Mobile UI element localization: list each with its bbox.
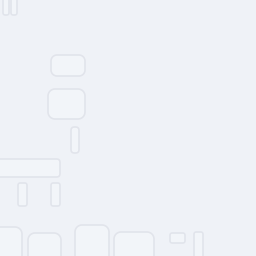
button[interactable]: Fourth item — [0, 0, 40, 36]
button[interactable]: Third item — [0, 0, 34, 42]
button[interactable]: Filter — [0, 0, 6, 24]
button[interactable]: Sixth item — [0, 0, 9, 26]
button[interactable]: First item — [0, 0, 35, 40]
button[interactable]: Menu — [0, 0, 6, 24]
button[interactable]: Second item — [0, 0, 33, 34]
button[interactable]: Fifth item — [0, 0, 15, 10]
